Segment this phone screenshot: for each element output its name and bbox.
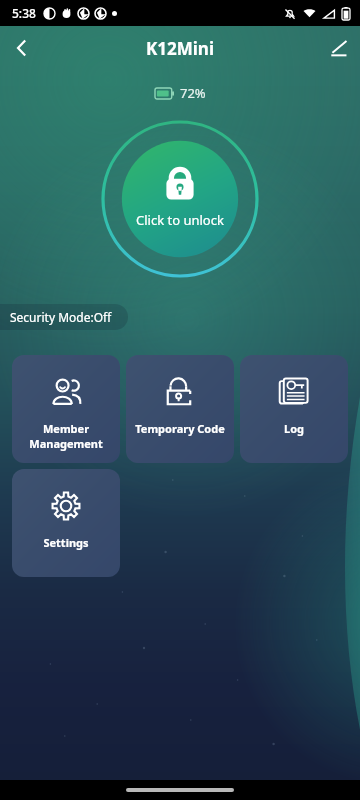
button[interactable]: Edit: [316, 26, 360, 70]
staticText: Log: [284, 421, 304, 436]
button[interactable]: Member Management: [12, 355, 120, 463]
staticText: Member Management: [29, 421, 103, 451]
staticText: Security Mode:Off: [10, 309, 112, 325]
button[interactable]: Temporary Code: [126, 355, 234, 463]
staticText: 72%: [180, 84, 206, 102]
staticText: 5:38: [12, 5, 36, 21]
button[interactable]: Click to unlock: [101, 120, 259, 278]
button[interactable]: Log: [240, 355, 348, 463]
button[interactable]: Back: [0, 26, 44, 70]
staticText: Click to unlock: [136, 211, 224, 229]
staticText: Temporary Code: [135, 421, 225, 436]
button[interactable]: Security Mode:Off: [10, 309, 112, 325]
staticText: Settings: [43, 535, 89, 550]
button[interactable]: Settings: [12, 469, 120, 577]
staticText: K12Mini: [146, 37, 214, 60]
